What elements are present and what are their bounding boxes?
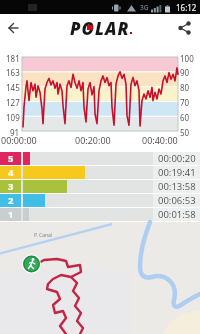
staticText: 2	[8, 194, 14, 207]
staticText: 91	[10, 127, 20, 138]
button[interactable]: 2	[0, 194, 200, 207]
staticText: POLAR	[70, 17, 130, 40]
button[interactable]: 1	[0, 208, 200, 221]
staticText: 16:12	[176, 2, 197, 13]
staticText: 00:40:00	[142, 134, 178, 146]
staticText: 70	[180, 97, 190, 108]
staticText: 4	[8, 166, 14, 179]
staticText: 00:13:58	[158, 180, 196, 193]
staticText: 127	[6, 97, 20, 108]
button[interactable]	[4, 18, 24, 38]
staticText: 50	[180, 127, 190, 138]
staticText: 100	[180, 53, 194, 64]
staticText: 00:06:53	[158, 194, 196, 207]
button[interactable]: 5	[0, 152, 200, 165]
staticText: 00:20:00	[75, 134, 111, 146]
staticText: 1	[8, 208, 14, 221]
staticText: 00:19:41	[158, 166, 196, 179]
button[interactable]	[176, 19, 194, 37]
staticText: 00:00:00	[1, 134, 37, 146]
staticText: 3G	[140, 3, 149, 12]
button[interactable]: 4	[0, 166, 200, 179]
button[interactable]: P. Canal	[0, 222, 200, 334]
button[interactable]: 3	[0, 180, 200, 193]
button[interactable]: POLAR	[70, 17, 130, 40]
staticText: 5	[8, 152, 14, 165]
staticText: 109	[6, 112, 20, 123]
staticText: 60	[180, 112, 190, 123]
staticText: 181	[6, 53, 20, 64]
staticText: 80	[180, 82, 190, 93]
staticText: 00:00:20	[158, 152, 196, 165]
staticText: 00:01:58	[158, 208, 196, 221]
staticText: P. Canal	[34, 232, 53, 239]
staticText: 90	[180, 67, 190, 78]
staticText: 163	[6, 67, 20, 78]
staticText: 3	[8, 180, 14, 193]
staticText: 145	[6, 82, 20, 93]
